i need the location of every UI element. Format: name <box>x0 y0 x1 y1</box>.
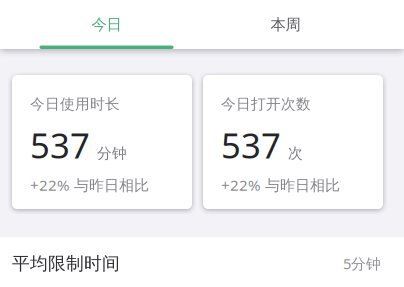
button[interactable]: 平均限制时间 <box>0 237 404 287</box>
staticText: 今日 <box>91 15 121 34</box>
staticText: 今日使用时长 <box>30 95 120 113</box>
staticText: 537 <box>221 121 281 169</box>
staticText: 本周 <box>270 15 300 34</box>
button[interactable]: 本周 <box>196 0 375 49</box>
staticText: 次 <box>288 144 303 163</box>
staticText: 今日打开次数 <box>221 95 311 113</box>
staticText: 5分钟 <box>343 253 381 273</box>
staticText: 537 <box>30 121 90 169</box>
button[interactable]: 今日 <box>17 0 196 49</box>
staticText: 平均限制时间 <box>12 252 120 275</box>
staticText: +22% 与昨日相比 <box>30 175 149 195</box>
staticText: +22% 与昨日相比 <box>221 175 340 195</box>
staticText: 分钟 <box>97 144 127 163</box>
